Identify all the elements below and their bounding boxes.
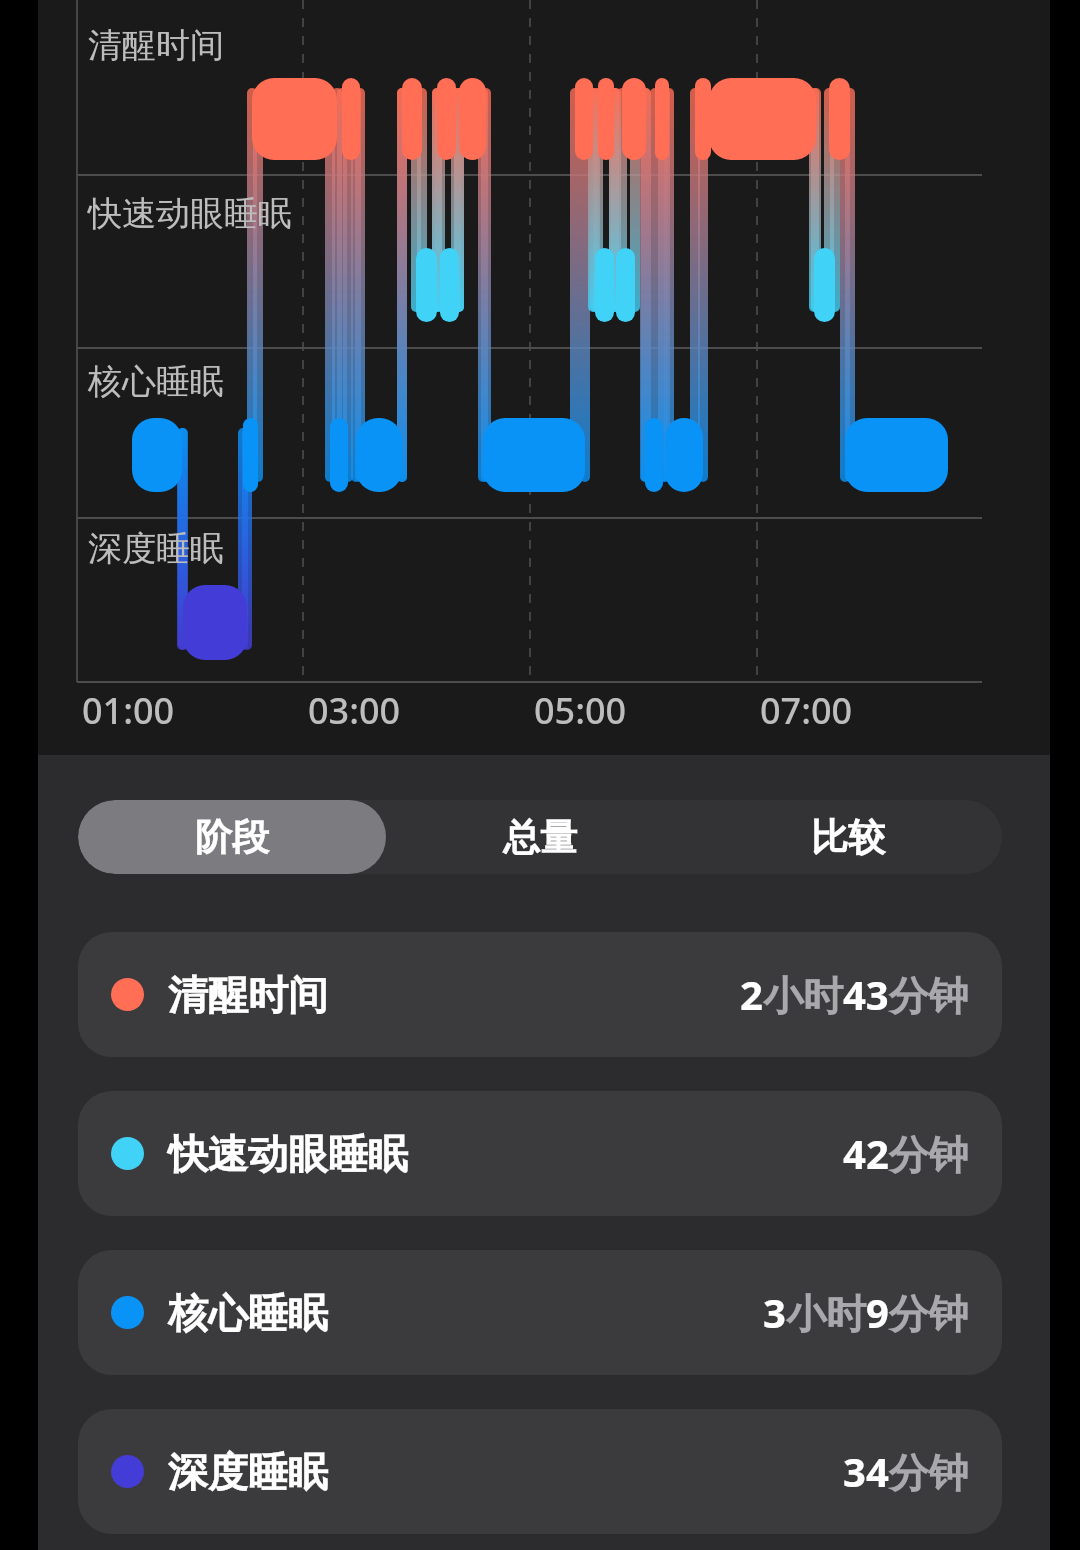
staticText: 比较 [811, 814, 885, 861]
staticText: 34分钟 [843, 1444, 969, 1499]
staticText: 深度睡眠 [168, 1447, 328, 1497]
staticText: 深度睡眠 [88, 527, 224, 570]
button[interactable]: 总量 [386, 800, 694, 874]
staticText: 03:00 [308, 686, 401, 735]
staticText: 核心睡眠 [168, 1288, 328, 1338]
staticText: 07:00 [760, 686, 853, 735]
staticText: 05:00 [534, 686, 627, 735]
button[interactable]: 比较 [694, 800, 1002, 874]
staticText: 01:00 [82, 686, 175, 735]
staticText: 快速动眼睡眠 [168, 1129, 408, 1179]
button[interactable]: 阶段 [78, 800, 386, 874]
staticText: 快速动眼睡眠 [88, 192, 292, 235]
staticText: 清醒时间 [88, 24, 224, 67]
button[interactable]: 快速动眼睡眠 [78, 1091, 1002, 1216]
staticText: 3小时9分钟 [763, 1285, 969, 1340]
staticText: 总量 [503, 814, 577, 861]
staticText: 42分钟 [843, 1126, 969, 1181]
button[interactable]: 深度睡眠 [78, 1409, 1002, 1534]
staticText: 阶段 [195, 814, 269, 861]
staticText: 2小时43分钟 [740, 967, 969, 1022]
button[interactable]: 清醒时间 [78, 932, 1002, 1057]
button[interactable]: 核心睡眠 [78, 1250, 1002, 1375]
staticText: 清醒时间 [168, 970, 328, 1020]
staticText: 核心睡眠 [88, 360, 224, 403]
